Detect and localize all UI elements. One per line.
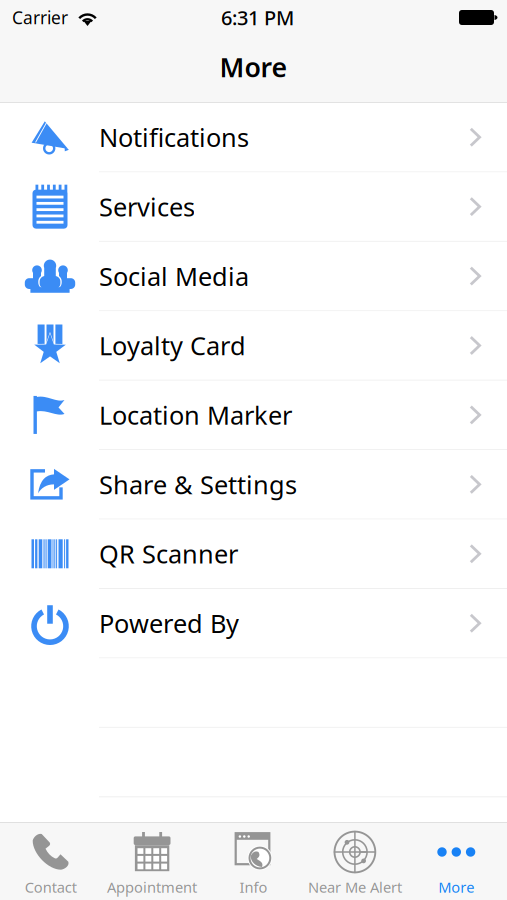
button[interactable]: Info [203, 823, 304, 900]
button[interactable]: Appointment [101, 823, 203, 900]
staticText: Appointment [107, 877, 197, 897]
staticText: More [219, 49, 287, 85]
button[interactable]: Contact [0, 823, 101, 900]
staticText: Share & Settings [99, 467, 297, 501]
staticText: Loyalty Card [99, 329, 246, 362]
button[interactable]: Share & Settings [0, 450, 507, 519]
staticText: More [438, 877, 474, 897]
button[interactable]: Powered By [0, 589, 507, 657]
button[interactable]: More [406, 823, 507, 900]
button[interactable]: Social Media [0, 242, 507, 310]
staticText: Powered By [99, 606, 239, 640]
staticText: Carrier [12, 6, 68, 29]
staticText: Location Marker [99, 398, 292, 432]
button[interactable]: Notifications [0, 103, 507, 171]
staticText: Social Media [99, 259, 249, 293]
button[interactable]: Location Marker [0, 381, 507, 449]
button[interactable]: Services [0, 172, 507, 241]
button[interactable]: Near Me Alert [304, 823, 406, 900]
staticText: Services [99, 190, 195, 223]
staticText: Near Me Alert [308, 877, 402, 897]
staticText: Notifications [99, 120, 249, 154]
staticText: QR Scanner [99, 537, 238, 571]
staticText: Info [239, 877, 267, 897]
staticText: 6:31 PM [221, 4, 294, 31]
staticText: Contact [25, 877, 77, 897]
button[interactable]: Loyalty Card [0, 311, 507, 380]
button[interactable]: QR Scanner [0, 520, 507, 588]
